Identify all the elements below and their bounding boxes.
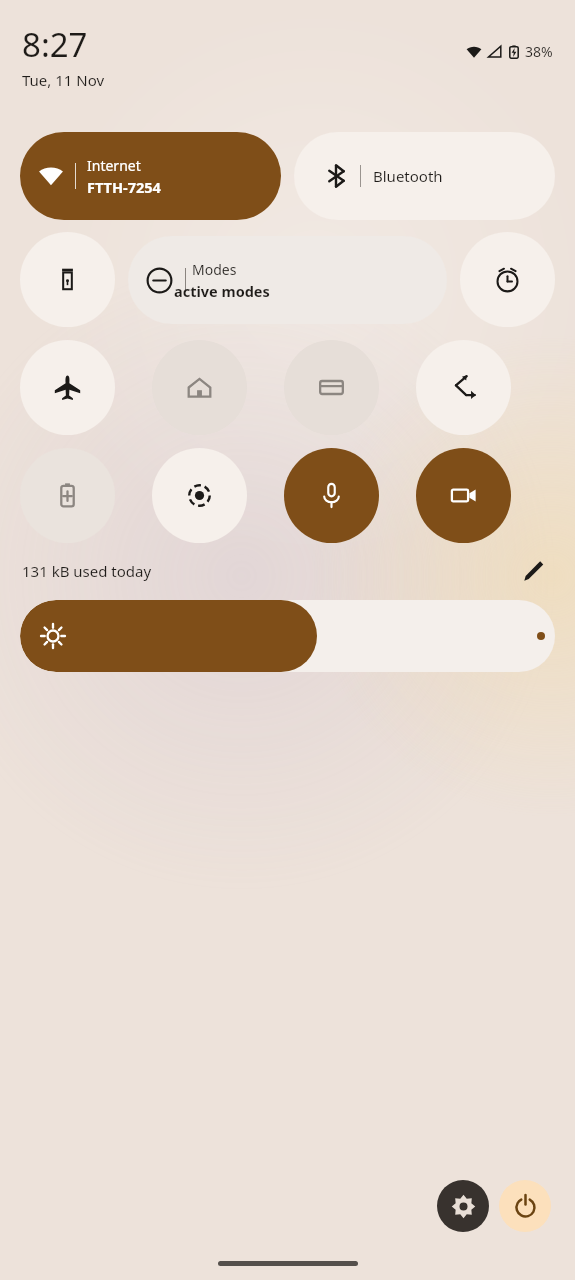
button[interactable]: Quick setting [460, 232, 555, 327]
staticText: FTTH-7254 [87, 177, 161, 197]
staticText: active modes [174, 281, 270, 301]
button[interactable]: Quick setting [20, 232, 115, 327]
staticText: Bluetooth [373, 166, 443, 186]
button[interactable]: Brightness [20, 600, 555, 672]
button[interactable]: Power [499, 1180, 551, 1232]
button[interactable]: Quick setting [284, 448, 379, 543]
button[interactable]: Edit [517, 554, 551, 588]
staticText: 38% [525, 42, 553, 61]
staticText: 8:27 [22, 22, 88, 67]
staticText: Tue, 11 Nov [22, 70, 105, 90]
button[interactable]: Quick setting [416, 448, 511, 543]
staticText: 131 kB used today [22, 561, 152, 581]
button[interactable]: Quick setting [284, 340, 379, 435]
staticText: Internet [87, 156, 141, 175]
button[interactable]: Quick setting [20, 340, 115, 435]
button[interactable]: Quick setting [416, 340, 511, 435]
button[interactable]: Quick setting [152, 340, 247, 435]
button[interactable]: Quick setting [20, 448, 115, 543]
button[interactable]: Settings [437, 1180, 489, 1232]
button[interactable]: Bluetooth [294, 132, 555, 220]
button[interactable]: Quick setting [152, 448, 247, 543]
button[interactable]: Internet [20, 132, 281, 220]
button[interactable]: Modes [128, 236, 447, 324]
staticText: Modes [192, 260, 237, 279]
